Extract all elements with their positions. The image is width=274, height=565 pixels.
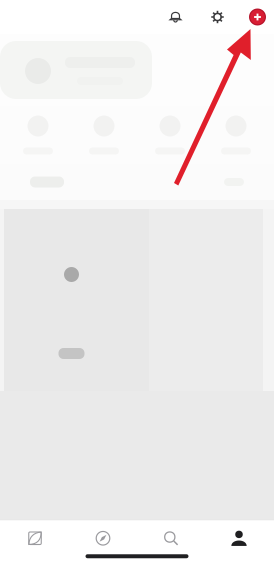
button[interactable]: Profile [205, 530, 273, 546]
button[interactable]: Quick action [5, 108, 71, 162]
button[interactable]: Notifications [159, 0, 191, 34]
button[interactable]: Quick action [71, 108, 137, 162]
button[interactable]: Discover [69, 530, 137, 546]
button[interactable]: Quick action [203, 108, 269, 162]
button[interactable]: Settings [201, 0, 233, 34]
button[interactable]: Add [241, 0, 273, 34]
button[interactable]: Home [1, 530, 69, 546]
button[interactable]: Search [137, 530, 205, 546]
button[interactable]: Quick action [137, 108, 203, 162]
